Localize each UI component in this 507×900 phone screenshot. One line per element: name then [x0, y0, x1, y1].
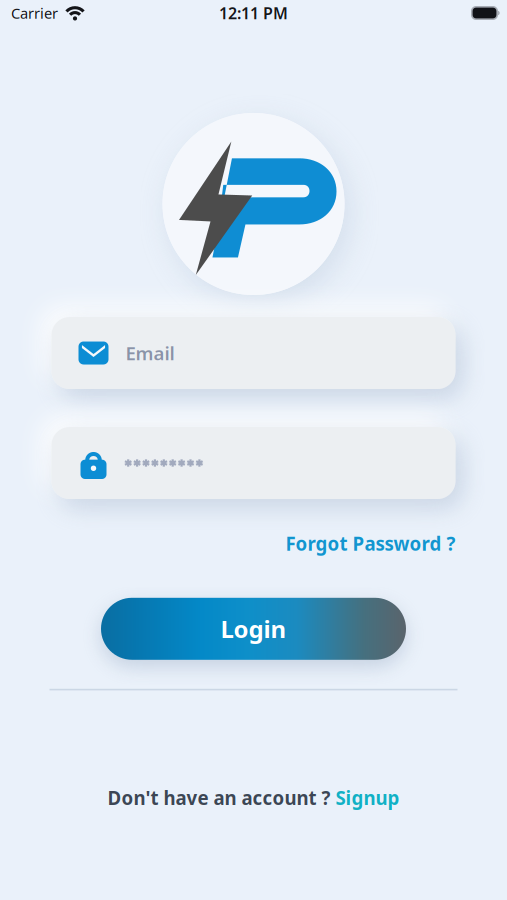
staticText: Signup [335, 785, 399, 810]
button[interactable]: Login [101, 598, 406, 660]
staticText: Don't have an account ? [107, 785, 335, 810]
button[interactable]: Forgot Password ? [285, 531, 455, 556]
staticText: 12:11 PM [219, 2, 288, 24]
button[interactable]: Signup [335, 785, 399, 810]
staticText: Login [220, 613, 286, 645]
staticText: Carrier [11, 3, 58, 23]
button[interactable]: Email [51, 317, 455, 389]
staticText: Forgot Password ? [285, 531, 455, 556]
staticText: Email [125, 341, 174, 365]
button[interactable] [51, 427, 455, 499]
